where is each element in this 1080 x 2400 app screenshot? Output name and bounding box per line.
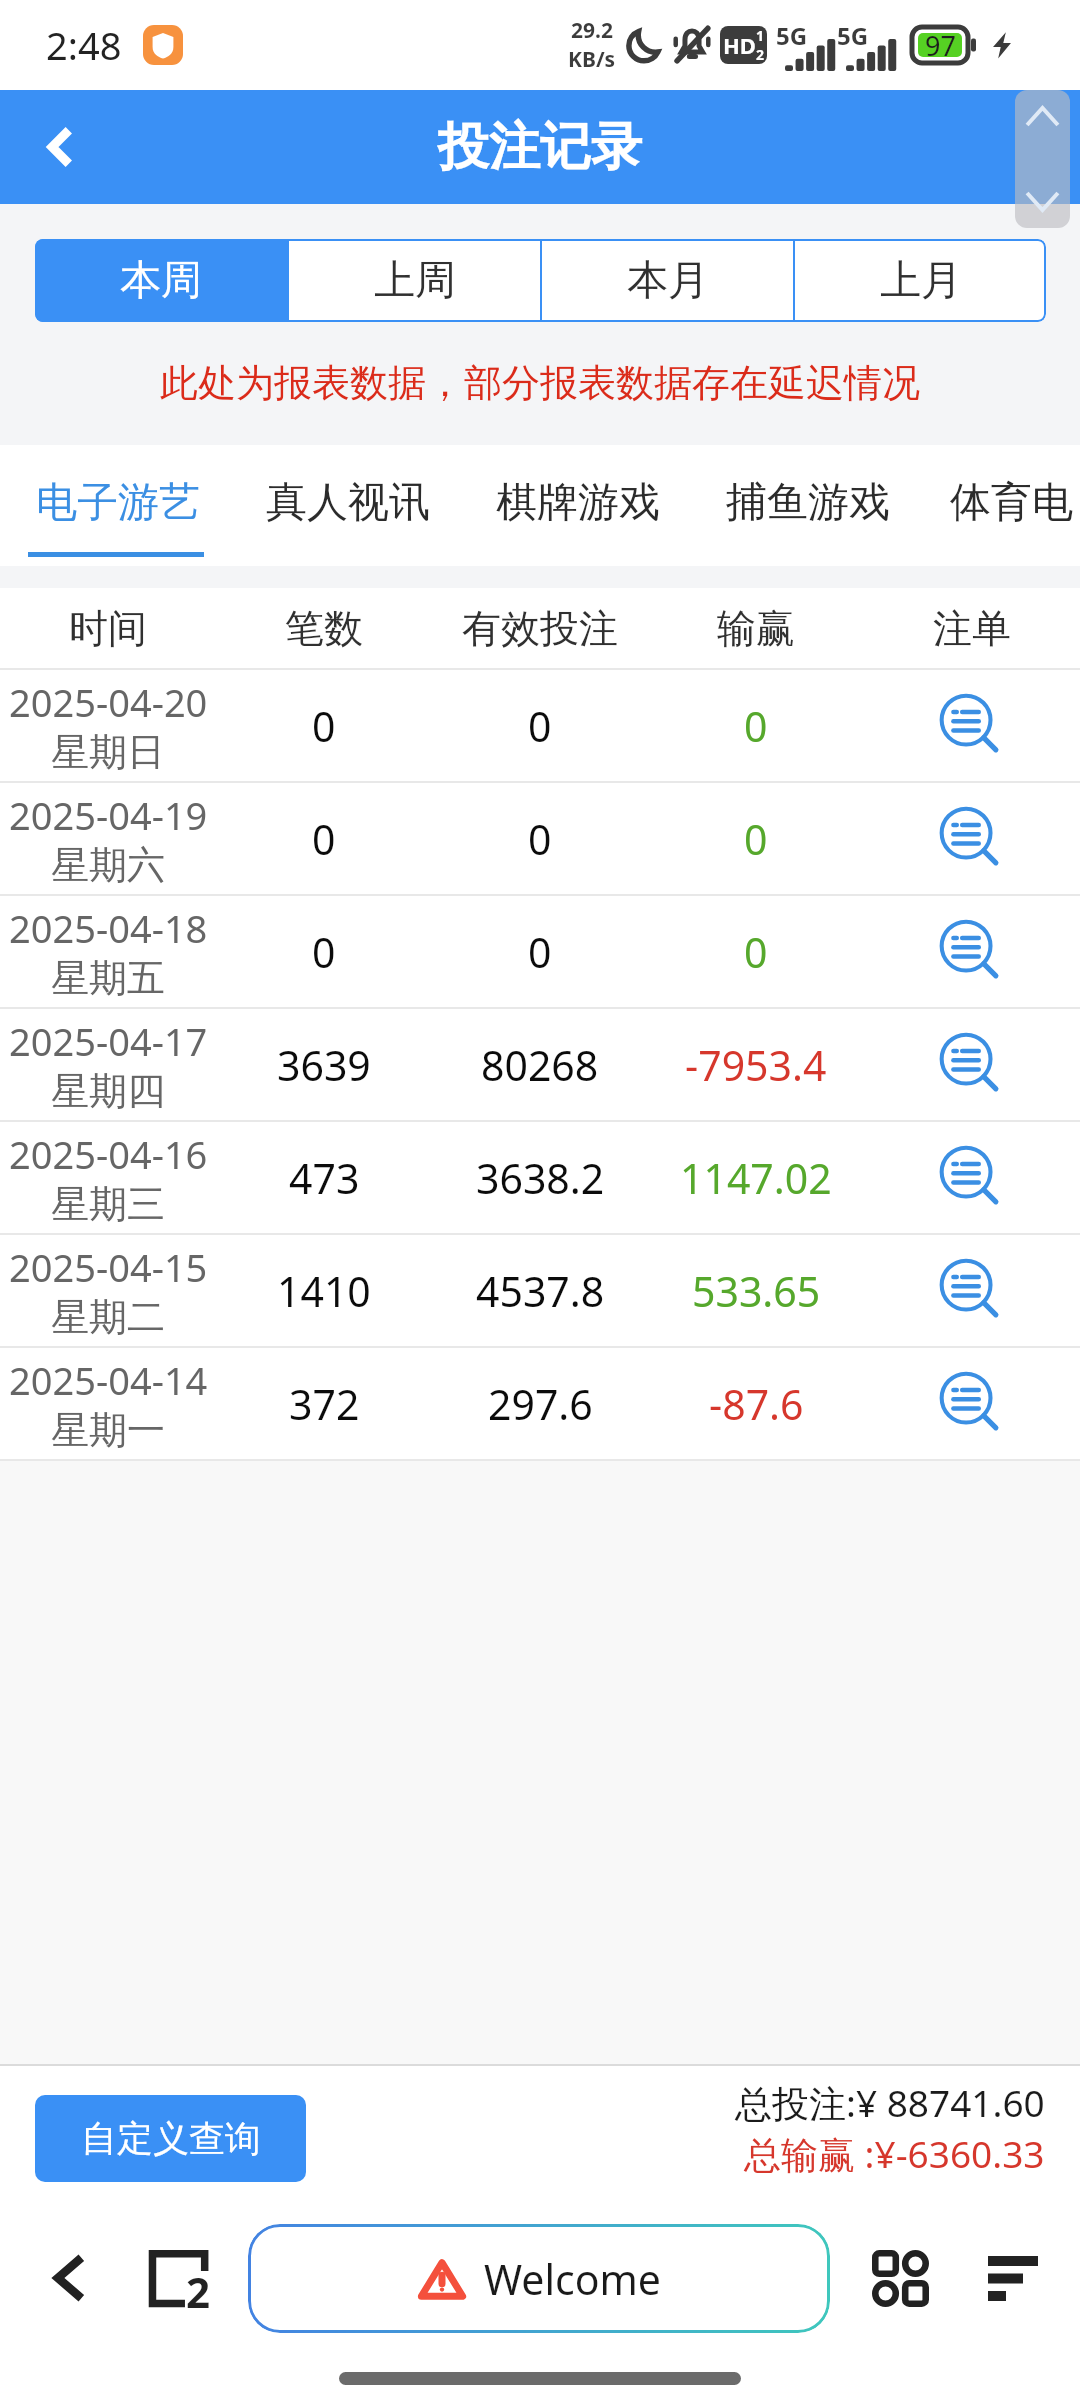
staticText: 此处为报表数据，部分报表数据存在延迟情况 [160, 359, 920, 407]
button[interactable]: Scroll [1015, 90, 1070, 228]
button[interactable]: View bet slip [922, 1015, 1022, 1115]
staticText: -87.6 [709, 1376, 804, 1432]
staticText: 体育电 [950, 477, 1073, 529]
button[interactable]: 2025-04-19 [0, 783, 1080, 894]
button[interactable]: 捕鱼游戏 [698, 445, 918, 566]
staticText: 总投注:¥ 88741.60 [735, 2077, 1045, 2128]
button[interactable]: 2025-04-18 [0, 896, 1080, 1007]
staticText: 时间 [69, 604, 147, 653]
staticText: 2025-04-20 [9, 676, 208, 728]
staticText: 自定义查询 [81, 2116, 261, 2161]
staticText: 0 [528, 811, 552, 867]
button[interactable]: View bet slip [922, 902, 1022, 1002]
button[interactable]: View bet slip [922, 1128, 1022, 1228]
staticText: 372 [289, 1376, 360, 1432]
staticText: 2025-04-16 [9, 1128, 208, 1180]
button[interactable]: View bet slip [922, 1354, 1022, 1454]
button[interactable]: View bet slip [922, 789, 1022, 889]
staticText: 2:48 [46, 19, 122, 71]
staticText: 2025-04-17 [9, 1015, 208, 1067]
button[interactable]: 上月 [795, 239, 1046, 322]
staticText: -7953.4 [685, 1037, 827, 1093]
button[interactable]: Welcome [248, 2224, 830, 2333]
staticText: 1410 [277, 1263, 371, 1319]
staticText: 80268 [481, 1037, 599, 1093]
staticText: KB/s [568, 45, 616, 74]
button[interactable]: Back [12, 99, 108, 195]
staticText: 0 [312, 698, 336, 754]
staticText: 0 [312, 924, 336, 980]
staticText: 3639 [277, 1037, 371, 1093]
staticText: 捕鱼游戏 [726, 477, 890, 529]
staticText: 星期六 [51, 841, 165, 889]
staticText: 星期四 [51, 1067, 165, 1115]
staticText: 2 [186, 2263, 211, 2320]
staticText: HD [723, 30, 756, 60]
staticText: 2025-04-14 [9, 1354, 208, 1406]
button[interactable]: 自定义查询 [35, 2095, 306, 2182]
button[interactable]: 2025-04-14 [0, 1348, 1080, 1459]
button[interactable]: Back [26, 2236, 110, 2320]
staticText: 有效投注 [462, 604, 618, 653]
staticText: 星期五 [51, 954, 165, 1002]
button[interactable]: 本周 [35, 239, 287, 322]
staticText: 星期三 [51, 1180, 165, 1228]
staticText: 2 [756, 45, 765, 64]
button[interactable]: View bet slip [922, 676, 1022, 776]
button[interactable]: 本月 [542, 239, 793, 322]
button[interactable]: View bet slip [922, 1241, 1022, 1341]
staticText: 电子游艺 [36, 477, 200, 529]
staticText: 2025-04-19 [9, 789, 208, 841]
staticText: 2025-04-18 [9, 902, 208, 954]
staticText: 2025-04-15 [9, 1241, 208, 1293]
staticText: 注单 [933, 604, 1011, 653]
staticText: 297.6 [488, 1376, 593, 1432]
staticText: 97 [925, 27, 956, 64]
staticText: 上月 [880, 255, 962, 307]
button[interactable]: 2025-04-15 [0, 1235, 1080, 1346]
staticText: 5G [837, 19, 869, 52]
button[interactable]: 真人视讯 [238, 445, 458, 566]
staticText: 3638.2 [476, 1150, 605, 1206]
button[interactable]: 棋牌游戏 [468, 445, 688, 566]
button[interactable]: 体育电 [942, 445, 1080, 566]
staticText: 0 [528, 924, 552, 980]
button[interactable]: Tabs [136, 2236, 220, 2320]
staticText: 29.2 [571, 16, 613, 45]
button[interactable]: 2025-04-17 [0, 1009, 1080, 1120]
button[interactable]: 上周 [289, 239, 540, 322]
button[interactable]: 2025-04-20 [0, 670, 1080, 781]
staticText: 1 [756, 26, 765, 45]
staticText: 0 [744, 924, 768, 980]
staticText: 473 [289, 1150, 360, 1206]
staticText: 总输赢 :¥-6360.33 [744, 2128, 1045, 2179]
staticText: Welcome [484, 2251, 661, 2307]
staticText: 星期一 [51, 1406, 165, 1454]
staticText: 533.65 [692, 1263, 821, 1319]
staticText: 本周 [120, 255, 202, 307]
staticText: 真人视讯 [266, 477, 430, 529]
staticText: 棋牌游戏 [496, 477, 660, 529]
staticText: 5G [776, 19, 808, 52]
staticText: 0 [528, 698, 552, 754]
staticText: 上周 [374, 255, 456, 307]
staticText: 星期二 [51, 1293, 165, 1341]
staticText: 0 [312, 811, 336, 867]
button[interactable]: 电子游艺 [8, 445, 228, 566]
staticText: 4537.8 [476, 1263, 605, 1319]
button[interactable]: Menu [971, 2236, 1055, 2320]
staticText: 星期日 [51, 728, 165, 776]
staticText: 笔数 [285, 604, 363, 653]
staticText: 投注记录 [438, 115, 642, 179]
staticText: 本月 [627, 255, 709, 307]
staticText: 1147.02 [680, 1150, 832, 1206]
staticText: 0 [744, 811, 768, 867]
button[interactable]: Apps [858, 2236, 942, 2320]
button[interactable]: 2025-04-16 [0, 1122, 1080, 1233]
staticText: 输赢 [717, 604, 795, 653]
staticText: 0 [744, 698, 768, 754]
